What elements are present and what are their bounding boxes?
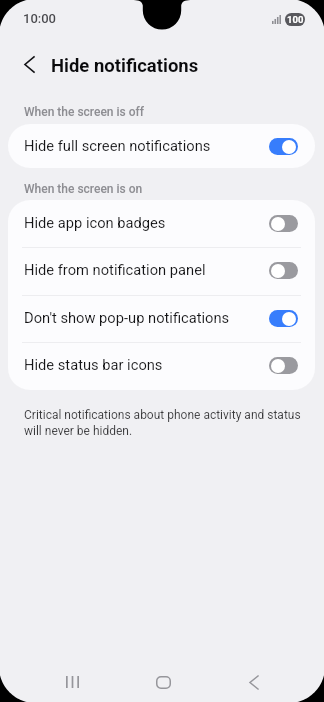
- staticText: 100: [287, 14, 304, 25]
- button[interactable]: Recent apps: [52, 662, 92, 702]
- button[interactable]: Hide status bar icons: [8, 342, 315, 389]
- staticText: 10:00: [23, 11, 56, 26]
- button[interactable]: Hide full screen notifications: [8, 124, 315, 168]
- staticText: Hide from notification panel: [24, 261, 269, 278]
- staticText: Hide full screen notifications: [24, 137, 269, 154]
- button[interactable]: Hide app icon badges: [8, 200, 315, 247]
- staticText: Hide app icon badges: [24, 214, 269, 231]
- button[interactable]: Home: [143, 662, 183, 702]
- staticText: Hide status bar icons: [24, 356, 269, 373]
- button[interactable]: Don't show pop-up notifications: [8, 295, 315, 342]
- staticText: When the screen is on: [24, 182, 143, 196]
- staticText: Don't show pop-up notifications: [24, 309, 269, 326]
- button[interactable]: Navigate up: [14, 49, 44, 79]
- staticText: Critical notifications about phone activ…: [24, 406, 316, 438]
- button[interactable]: Hide from notification panel: [8, 247, 315, 294]
- button[interactable]: Back: [234, 662, 274, 702]
- staticText: When the screen is off: [24, 105, 144, 119]
- staticText: Hide notifications: [51, 55, 199, 77]
